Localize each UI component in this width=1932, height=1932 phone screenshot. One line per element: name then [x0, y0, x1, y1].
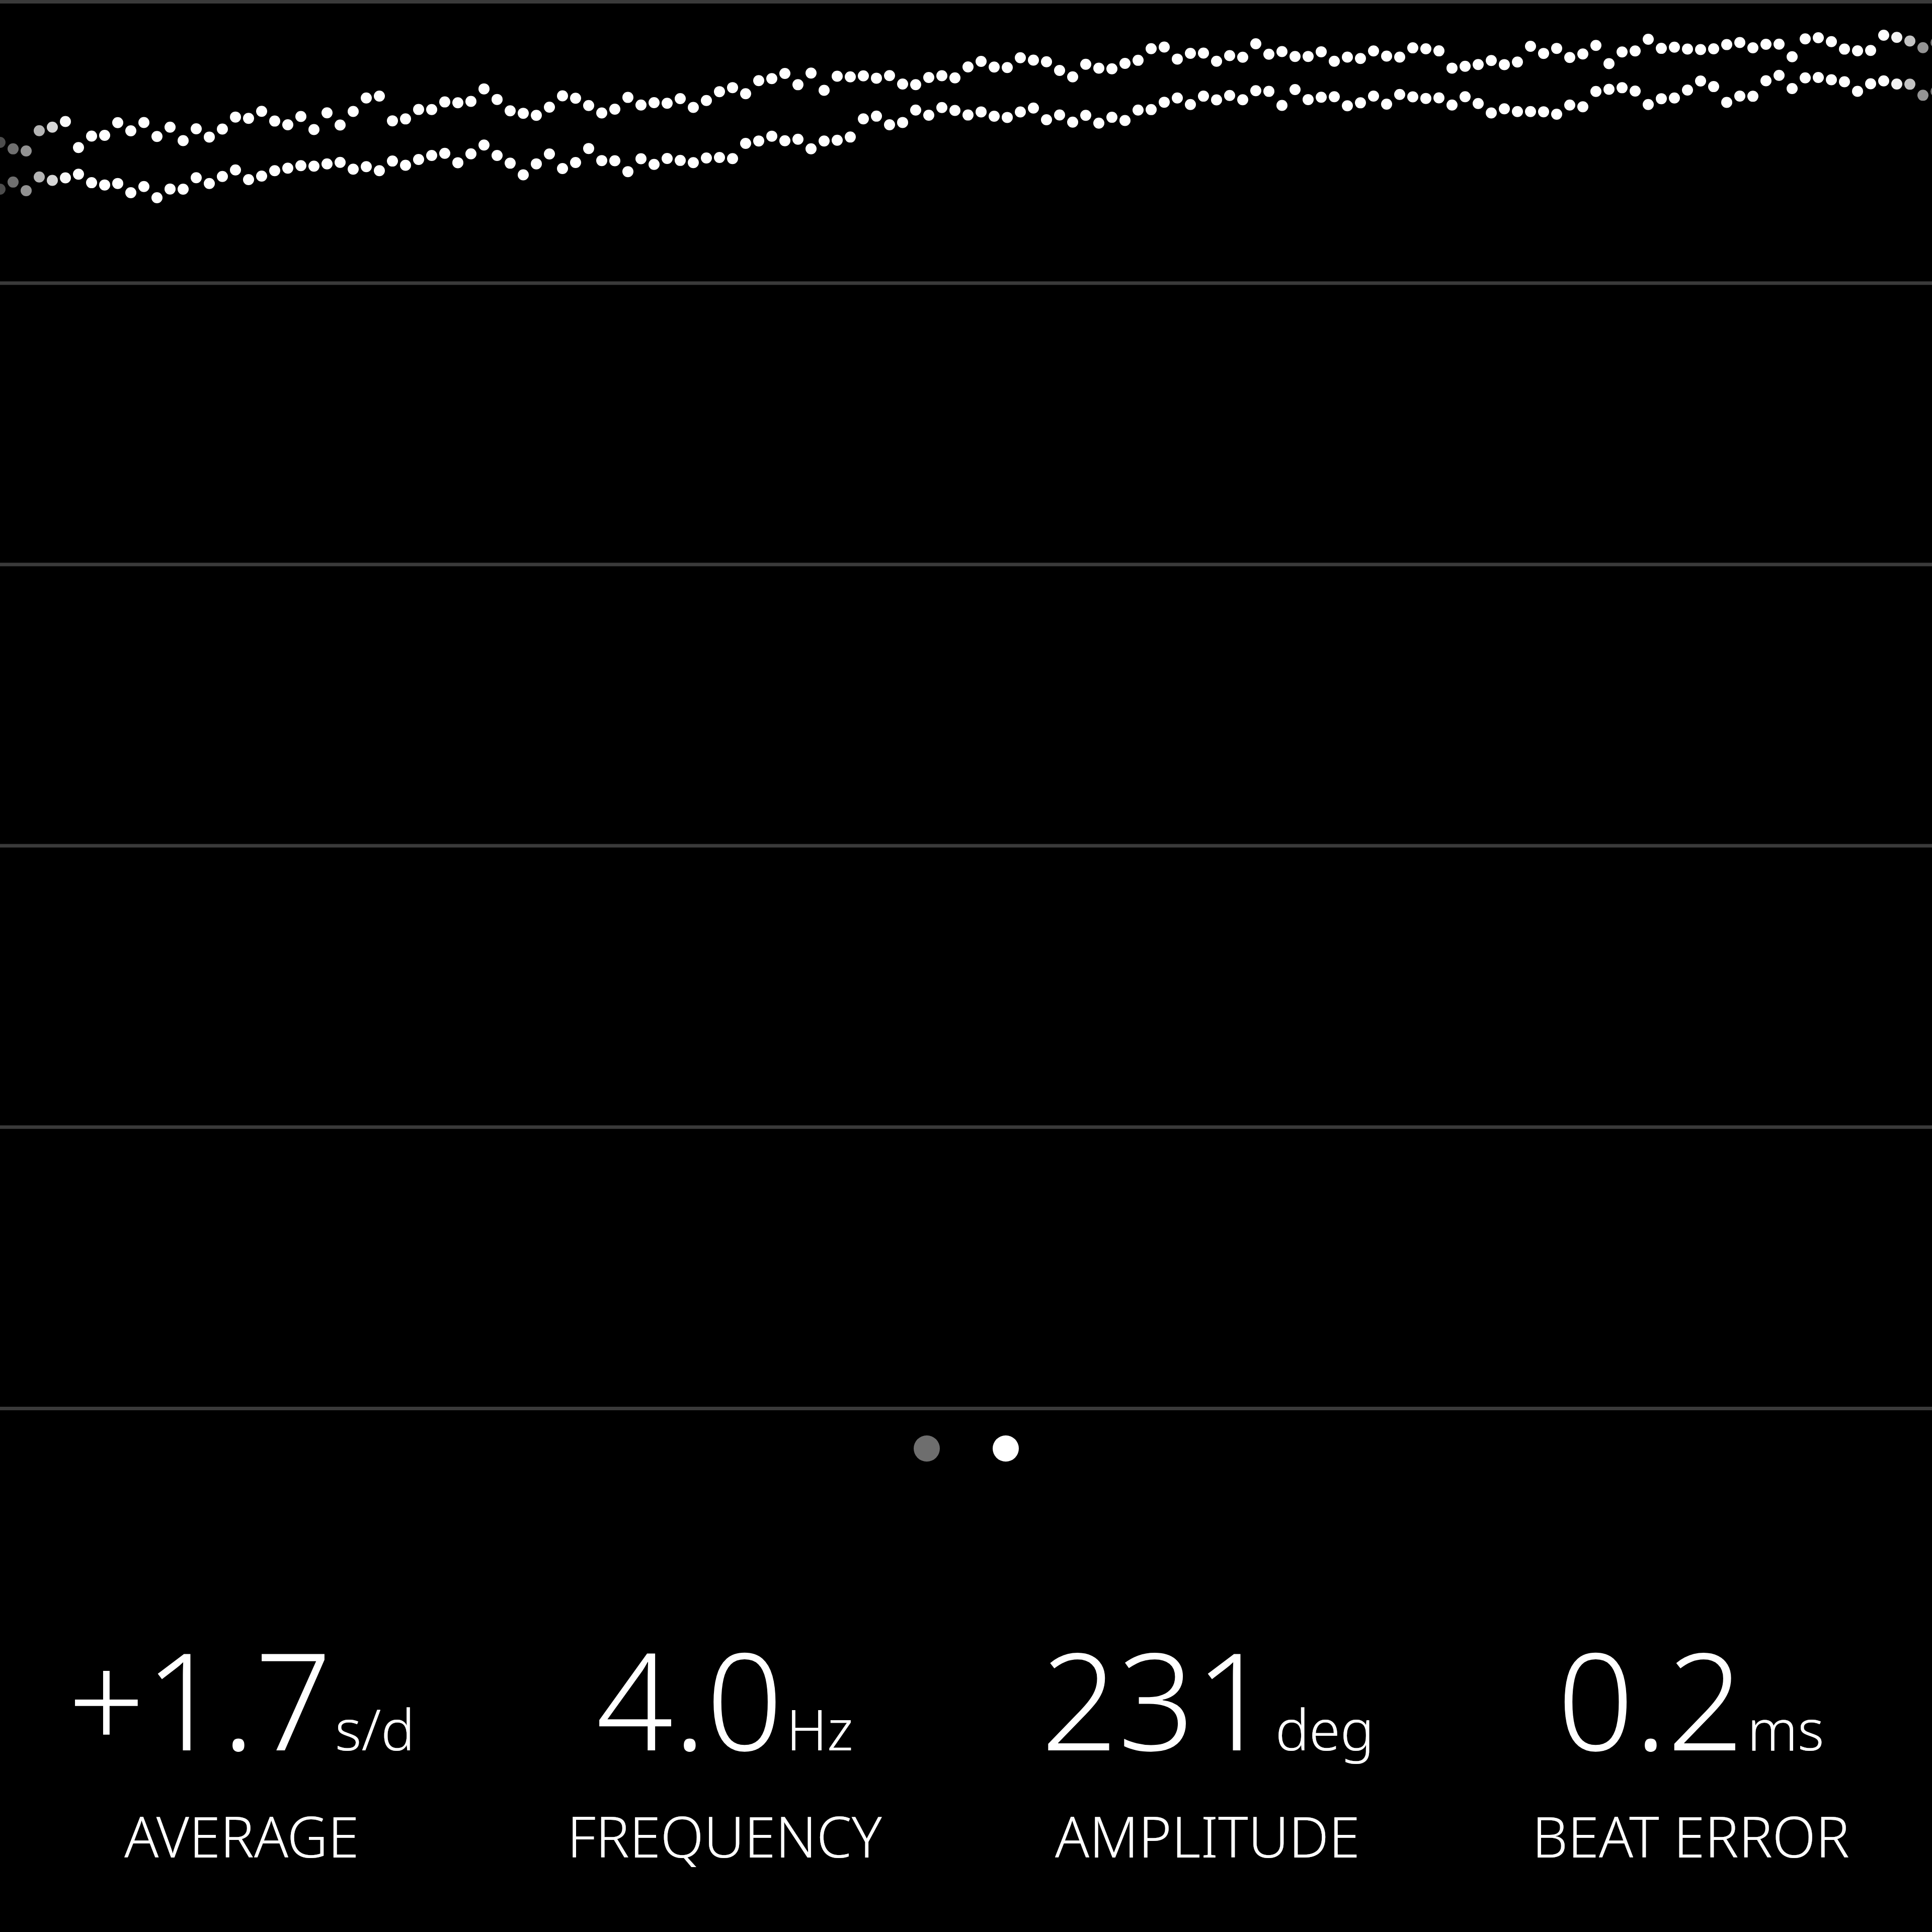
staticText: FREQUENCY: [567, 1797, 882, 1874]
staticText: 231: [1041, 1606, 1272, 1790]
staticText: 0.2: [1557, 1606, 1744, 1790]
button[interactable]: Page 2, selected: [993, 1435, 1019, 1462]
staticText: Hz: [786, 1690, 853, 1767]
staticText: s/d: [335, 1690, 415, 1767]
staticText: deg: [1275, 1690, 1374, 1767]
staticText: 4.0: [596, 1606, 783, 1790]
button[interactable]: +1.7: [0, 1606, 483, 1932]
button[interactable]: 231: [966, 1606, 1449, 1932]
staticText: AVERAGE: [124, 1797, 359, 1874]
button[interactable]: 0.2: [1449, 1606, 1932, 1932]
button[interactable]: Page 1: [914, 1435, 940, 1462]
button[interactable]: [0, 0, 1932, 1410]
staticText: +1.7: [68, 1606, 332, 1790]
staticText: AMPLITUDE: [1055, 1797, 1360, 1874]
button[interactable]: 4.0: [483, 1606, 966, 1932]
staticText: BEAT ERROR: [1532, 1797, 1849, 1874]
staticText: ms: [1747, 1690, 1824, 1767]
